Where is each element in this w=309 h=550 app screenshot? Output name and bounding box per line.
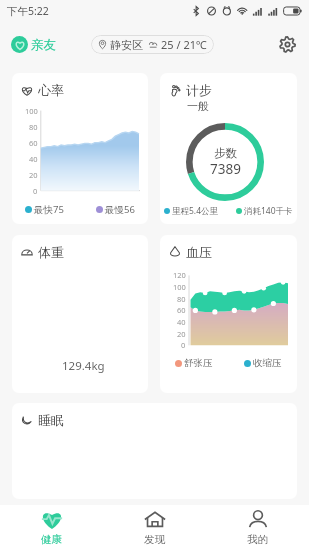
staticText: 舒张压: [184, 357, 213, 369]
staticText: 最慢56: [105, 203, 135, 216]
staticText: 40: [177, 317, 186, 327]
staticText: 里程5.4公里: [172, 205, 219, 217]
button[interactable]: 计步: [160, 73, 297, 224]
staticText: 静安区: [110, 38, 143, 52]
staticText: 20: [29, 170, 38, 180]
staticText: 心率: [38, 82, 64, 98]
staticText: 健康: [41, 533, 62, 546]
button[interactable]: 我的: [206, 505, 309, 550]
staticText: 7389: [210, 160, 241, 178]
staticText: 100: [25, 106, 38, 116]
button[interactable]: 体重: [12, 235, 148, 393]
staticText: 我的: [247, 533, 268, 546]
button[interactable]: 发现: [103, 505, 206, 550]
staticText: 0: [33, 186, 38, 196]
button[interactable]: 亲友: [11, 36, 56, 53]
staticText: 血压: [186, 244, 212, 260]
staticText: 睡眠: [38, 412, 64, 428]
button[interactable]: 心率: [12, 73, 148, 224]
staticText: 收缩压: [253, 357, 282, 369]
staticText: 发现: [144, 533, 165, 546]
staticText: 消耗140千卡: [244, 205, 293, 217]
staticText: 120: [173, 270, 186, 280]
staticText: 0: [181, 340, 186, 350]
staticText: 下午5:22: [7, 4, 49, 18]
staticText: 25 / 21℃: [161, 37, 207, 52]
staticText: 40: [29, 154, 38, 164]
staticText: 20: [177, 329, 186, 339]
staticText: 最快75: [34, 203, 64, 216]
staticText: 100: [173, 282, 186, 292]
button[interactable]: 血压: [160, 235, 297, 393]
staticText: 80: [29, 122, 38, 132]
staticText: 亲友: [31, 37, 56, 53]
button[interactable]: Settings: [273, 30, 301, 58]
staticText: 60: [29, 138, 38, 148]
staticText: 80: [177, 294, 186, 304]
button[interactable]: 健康: [0, 505, 103, 550]
staticText: 体重: [38, 244, 64, 260]
staticText: 计步: [186, 82, 212, 98]
button[interactable]: 静安区: [91, 35, 214, 54]
staticText: 一般: [187, 99, 209, 113]
staticText: 129.4kg: [62, 358, 105, 374]
button[interactable]: 睡眠: [12, 403, 297, 499]
staticText: 步数: [214, 146, 237, 160]
staticText: 60: [177, 305, 186, 315]
